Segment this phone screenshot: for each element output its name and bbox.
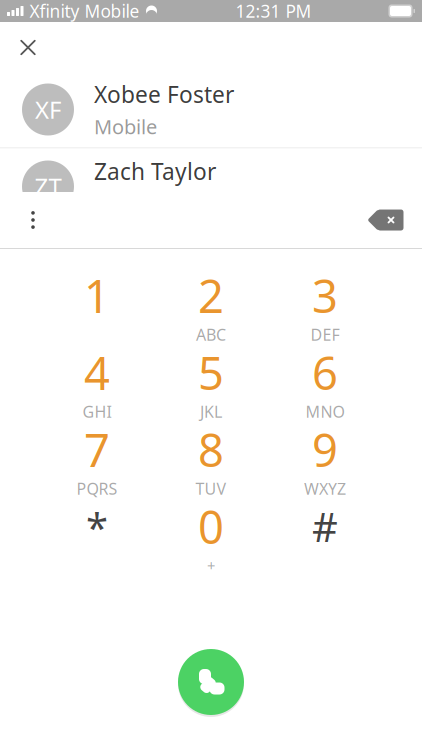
button[interactable]: More options [10,197,56,243]
button[interactable]: Close [6,25,50,69]
staticText: 2 [198,265,224,326]
staticText: JD [35,17,60,48]
staticText: 7 [84,419,110,480]
staticText: 6 [312,342,338,403]
staticText: Xfinity Mobile [29,0,139,22]
button[interactable]: 9 [268,419,382,496]
button[interactable]: 1 [40,265,154,342]
button[interactable]: 4 [40,342,154,419]
staticText: # [312,500,338,553]
button[interactable]: 7 [40,419,154,496]
button[interactable]: 8 [154,419,268,496]
staticText: PQRS [76,478,117,499]
button[interactable]: ZT [0,148,422,224]
staticText: Jane Doe [94,2,190,32]
staticText: 8 [198,419,224,480]
staticText: + [207,556,215,575]
button[interactable]: * [40,496,154,573]
staticText: DEF [310,324,339,345]
staticText: 9 [312,419,338,480]
staticText: ABC [196,324,226,345]
button[interactable]: Call [163,634,259,730]
staticText: XF [35,94,61,125]
staticText: 0 [198,496,224,557]
button[interactable]: # [268,496,382,573]
staticText: JKL [200,401,222,422]
button[interactable]: Delete [362,198,412,242]
button[interactable]: 6 [268,342,382,419]
button[interactable]: 0 [154,496,268,573]
staticText: Xobee Foster [94,79,234,109]
staticText: 12:31 PM [235,0,311,22]
button[interactable]: 5 [154,342,268,419]
staticText: WXYZ [304,478,346,499]
staticText: * [86,500,108,553]
staticText: 5 [198,342,224,403]
staticText: MNO [305,401,344,422]
staticText: TUV [195,478,226,499]
button[interactable]: XF [0,71,422,147]
staticText: 4 [84,342,110,403]
button[interactable]: JD [0,0,422,70]
button[interactable]: 2 [154,265,268,342]
staticText: Zach Taylor [94,156,216,186]
staticText: ZT [34,171,61,202]
button[interactable]: 3 [268,265,382,342]
staticText: 3 [312,265,338,326]
staticText: GHI [82,401,111,422]
staticText: Mobile [94,113,157,140]
staticText: 1 [84,265,110,326]
